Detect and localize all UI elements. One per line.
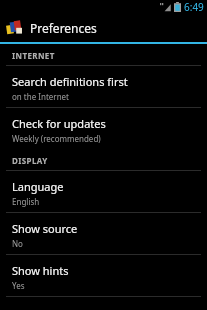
staticText: Show hints xyxy=(12,263,69,278)
staticText: Preferences xyxy=(30,20,97,36)
staticText: English xyxy=(12,196,40,207)
staticText: Show source xyxy=(12,221,78,236)
staticText: Check for updates xyxy=(12,116,106,131)
staticText: on the Internet xyxy=(12,91,69,102)
staticText: 6:49 xyxy=(184,0,204,14)
button[interactable]: Show source xyxy=(0,213,207,255)
button[interactable]: Check for updates xyxy=(0,108,207,149)
button[interactable]: Search definitions first xyxy=(0,66,207,108)
other: App icon xyxy=(6,20,23,37)
button[interactable]: Show hints xyxy=(0,255,207,297)
staticText: Weekly (recommended) xyxy=(12,133,101,144)
staticText: Language xyxy=(12,179,64,194)
staticText: Yes xyxy=(12,280,25,291)
staticText: Search definitions first xyxy=(12,74,128,89)
staticText: No xyxy=(12,238,23,249)
button[interactable]: Language xyxy=(0,171,207,213)
staticText: DISPLAY xyxy=(12,155,48,166)
button[interactable]: App icon xyxy=(0,14,207,42)
staticText: INTERNET xyxy=(12,50,55,61)
